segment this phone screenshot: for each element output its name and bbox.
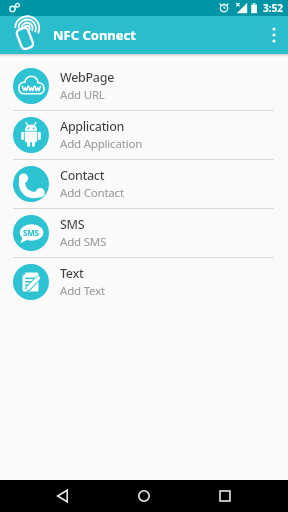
staticText: 3:52: [263, 1, 283, 15]
staticText: NFC Connect: [53, 26, 136, 44]
staticText: SMS: [23, 227, 39, 238]
button[interactable]: [260, 16, 288, 54]
button[interactable]: SMS: [0, 209, 288, 257]
button[interactable]: Application: [0, 111, 288, 159]
staticText: WebPage: [60, 69, 115, 86]
staticText: Add Application: [60, 136, 143, 152]
button[interactable]: [123, 480, 165, 512]
staticText: SMS: [60, 216, 85, 233]
staticText: Text: [60, 265, 84, 282]
staticText: Add URL: [60, 87, 105, 103]
staticText: Application: [60, 118, 125, 135]
button[interactable]: [42, 480, 84, 512]
staticText: Add Text: [60, 283, 105, 299]
button[interactable]: WebPage: [0, 62, 288, 110]
button[interactable]: Text: [0, 258, 288, 306]
button[interactable]: [204, 480, 246, 512]
staticText: Add Contact: [60, 185, 124, 201]
staticText: Contact: [60, 167, 105, 184]
staticText: Add SMS: [60, 234, 107, 250]
button[interactable]: Contact: [0, 160, 288, 208]
